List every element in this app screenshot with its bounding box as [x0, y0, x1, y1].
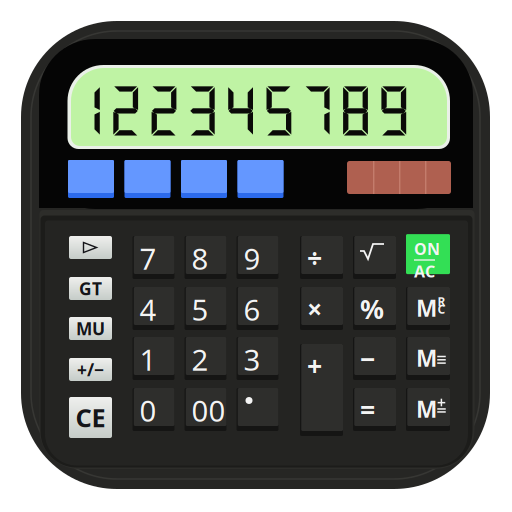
button[interactable]: Function 4: [237, 160, 283, 198]
staticText: M: [416, 343, 437, 373]
button[interactable]: 7: [132, 236, 174, 279]
button[interactable]: 6: [236, 287, 278, 330]
staticText: 4: [139, 290, 156, 329]
button[interactable]: Function 3: [181, 160, 227, 198]
button[interactable]: 0: [132, 388, 174, 431]
button[interactable]: 5: [184, 287, 226, 330]
button[interactable]: =: [353, 388, 396, 431]
button[interactable]: %: [353, 287, 396, 330]
button[interactable]: MU: [69, 317, 112, 340]
staticText: +: [307, 348, 322, 383]
staticText: C: [437, 301, 445, 317]
staticText: −: [360, 341, 375, 376]
staticText: 00: [191, 391, 225, 430]
staticText: 6: [243, 290, 260, 329]
staticText: 9: [243, 239, 260, 278]
button[interactable]: Decimal point: [236, 388, 278, 431]
staticText: 2: [191, 340, 208, 379]
button[interactable]: Memory recall: [406, 337, 450, 380]
staticText: M: [416, 293, 437, 323]
button[interactable]: GT: [69, 277, 112, 300]
staticText: 8: [191, 239, 208, 278]
button[interactable]: Square root: [353, 236, 396, 279]
button[interactable]: −: [353, 337, 396, 380]
button[interactable]: ÷: [300, 236, 343, 279]
button[interactable]: +: [300, 344, 343, 436]
staticText: 1: [139, 340, 156, 379]
button[interactable]: CE: [69, 397, 112, 438]
button[interactable]: 00: [184, 388, 226, 431]
button[interactable]: 2: [184, 337, 226, 380]
staticText: 3: [243, 340, 260, 379]
button[interactable]: ×: [300, 287, 343, 330]
staticText: MU: [76, 317, 105, 340]
staticText: 5: [191, 290, 208, 329]
button[interactable]: 9: [236, 236, 278, 279]
button[interactable]: Review: [69, 236, 112, 259]
staticText: CE: [75, 401, 105, 434]
button[interactable]: 8: [184, 236, 226, 279]
button[interactable]: 1: [132, 337, 174, 380]
button[interactable]: Memory recall clear: [406, 287, 450, 330]
button[interactable]: 3: [236, 337, 278, 380]
staticText: M: [416, 394, 437, 424]
staticText: +/−: [77, 358, 104, 381]
staticText: 0: [139, 391, 156, 430]
staticText: %: [360, 291, 384, 326]
button[interactable]: Function 2: [124, 160, 170, 198]
staticText: R: [437, 293, 445, 309]
button[interactable]: +/−: [69, 358, 112, 381]
staticText: GT: [79, 277, 102, 300]
button[interactable]: Function 1: [68, 160, 114, 198]
button[interactable]: Memory plus minus: [406, 388, 450, 431]
staticText: ON: [414, 238, 440, 259]
button[interactable]: 4: [132, 287, 174, 330]
staticText: =: [360, 392, 375, 427]
staticText: 7: [139, 239, 156, 278]
button[interactable]: ON: [406, 236, 450, 276]
staticText: ×: [307, 291, 322, 326]
staticText: AC: [414, 261, 435, 282]
staticText: ÷: [307, 240, 322, 275]
